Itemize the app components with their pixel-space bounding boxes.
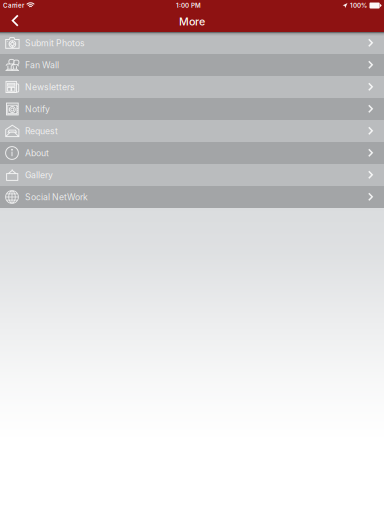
- staticText: 100%: [350, 2, 367, 9]
- staticText: Notify: [25, 104, 50, 114]
- staticText: Fan Wall: [25, 60, 59, 70]
- button[interactable]: Submit Photos: [0, 32, 384, 54]
- button[interactable]: About: [0, 142, 384, 164]
- staticText: 1:00 PM: [176, 2, 201, 9]
- button[interactable]: Notify: [0, 98, 384, 120]
- staticText: Newsletters: [25, 82, 75, 92]
- button[interactable]: Request: [0, 120, 384, 142]
- staticText: About: [25, 148, 49, 158]
- staticText: Social NetWork: [25, 192, 88, 202]
- button[interactable]: Fan Wall: [0, 54, 384, 76]
- staticText: More: [179, 15, 205, 28]
- button[interactable]: Social NetWork: [0, 186, 384, 208]
- staticText: Submit Photos: [25, 38, 85, 48]
- button[interactable]: Newsletters: [0, 76, 384, 98]
- button[interactable]: Back: [7, 11, 23, 32]
- staticText: Gallery: [25, 170, 53, 180]
- button[interactable]: Gallery: [0, 164, 384, 186]
- staticText: Request: [25, 126, 58, 136]
- staticText: Carrier: [3, 2, 24, 9]
